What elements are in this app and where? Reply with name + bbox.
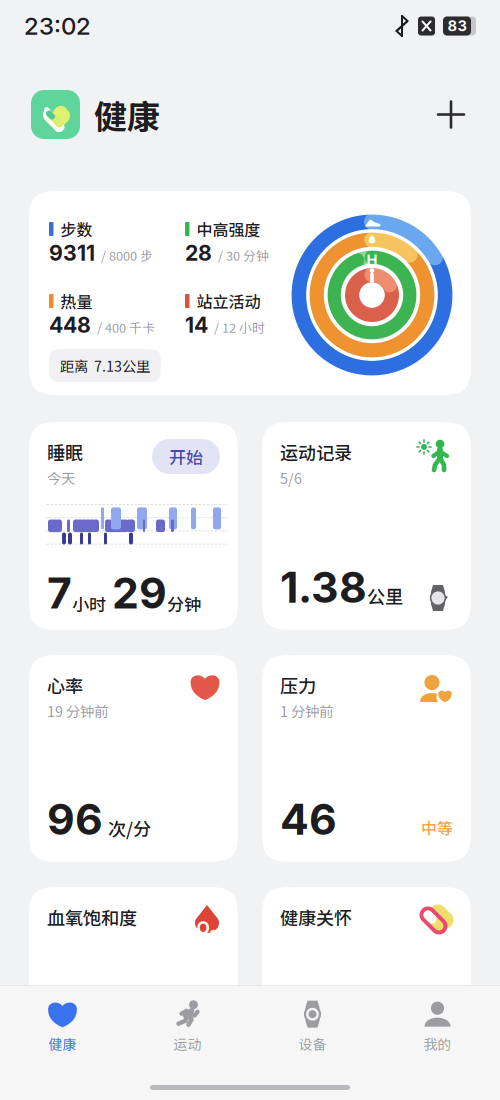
button[interactable]: 血氧饱和度 (29, 887, 238, 1094)
staticText: 健康 (48, 1034, 76, 1054)
staticText: 83 (447, 17, 466, 35)
staticText: 心率 (47, 672, 83, 698)
staticText: 今天 (47, 467, 75, 488)
staticText: 压力 (280, 672, 316, 698)
staticText: 5/6 (280, 467, 302, 488)
button[interactable]: 设备 (250, 995, 375, 1059)
staticText: H (366, 251, 377, 269)
staticText: 热量 (60, 289, 92, 313)
staticText: 1 分钟前 (280, 700, 333, 721)
staticText: 448 (49, 312, 91, 338)
staticText: 96 (47, 793, 103, 845)
staticText: 29 (112, 567, 167, 619)
staticText: 健康关怀 (280, 904, 352, 930)
button[interactable]: 运动记录 (262, 422, 471, 630)
staticText: 中高强度 (196, 217, 260, 241)
staticText: 步数 (60, 217, 92, 241)
staticText: 分钟 (167, 591, 201, 616)
staticText: 28 (185, 240, 212, 266)
staticText: 健康 (94, 91, 160, 138)
staticText: 血氧饱和度 (47, 904, 137, 930)
button[interactable]: 睡眠 (29, 422, 238, 630)
button[interactable]: 心率 (29, 655, 238, 862)
staticText: / 8000 步 (101, 246, 153, 264)
staticText: / 400 千卡 (97, 318, 155, 336)
staticText: / 30 分钟 (218, 246, 269, 264)
staticText: 次/分 (108, 815, 151, 841)
button[interactable]: 健康 (0, 995, 125, 1059)
staticText: 睡眠 (47, 439, 83, 465)
staticText: 46 (280, 793, 337, 845)
staticText: 中等 (421, 816, 453, 839)
staticText: 公里 (367, 583, 403, 609)
staticText: 设备 (298, 1034, 326, 1054)
staticText: 运动记录 (280, 439, 352, 465)
button[interactable]: 运动 (125, 995, 250, 1059)
button[interactable]: 添加 (433, 96, 469, 132)
button[interactable]: 健康关怀 (262, 887, 471, 1094)
staticText: 19 分钟前 (47, 700, 108, 721)
staticText: 9311 (49, 240, 95, 266)
staticText: 我的 (423, 1034, 451, 1054)
staticText: 运动 (173, 1034, 201, 1054)
staticText: 7 (47, 567, 72, 619)
button[interactable]: 压力 (262, 655, 471, 862)
staticText: 站立活动 (196, 289, 260, 313)
staticText: 开始 (169, 444, 203, 469)
staticText: 23:02 (24, 11, 91, 40)
staticText: 小时 (72, 591, 106, 616)
button[interactable]: 我的 (375, 995, 500, 1059)
staticText: 14 (185, 312, 208, 338)
staticText: / 12 小时 (214, 318, 265, 336)
staticText: O₂ (196, 917, 217, 938)
staticText: 距离 7.13公里 (60, 355, 150, 376)
staticText: 1.38 (280, 561, 367, 613)
button[interactable]: 开始 (152, 439, 220, 474)
